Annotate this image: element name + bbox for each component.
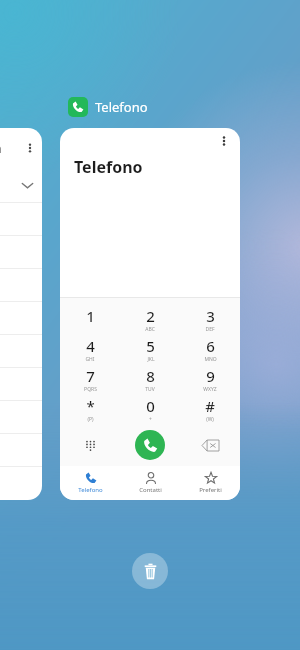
button[interactable]: 3 xyxy=(180,304,240,334)
button[interactable]: 9 xyxy=(180,364,240,394)
staticText: # xyxy=(205,396,215,416)
staticText: Telefono xyxy=(78,486,103,494)
staticText: GHI xyxy=(85,356,95,363)
staticText: (P) xyxy=(87,416,94,423)
button[interactable]: Contatti xyxy=(120,466,180,500)
staticText: Contatti xyxy=(139,486,162,494)
staticText: 1 xyxy=(86,306,95,326)
staticText: ca xyxy=(0,140,2,156)
button[interactable]: 5 xyxy=(120,334,180,364)
staticText: MNO xyxy=(204,356,217,363)
button[interactable]: * xyxy=(60,394,120,424)
button[interactable]: More options xyxy=(214,131,234,151)
staticText: WXYZ xyxy=(203,386,217,393)
staticText: DEF xyxy=(205,326,215,333)
staticText: PQRS xyxy=(84,386,97,393)
staticText: 8 xyxy=(146,366,155,386)
button[interactable]: Call xyxy=(135,430,165,460)
staticText: * xyxy=(86,396,95,416)
button[interactable] xyxy=(0,467,42,499)
staticText: JKL xyxy=(147,356,155,363)
staticText: Telefono xyxy=(95,98,148,116)
staticText: ABC xyxy=(145,326,155,333)
button[interactable]: 1 xyxy=(60,304,120,334)
button[interactable]: ca xyxy=(0,128,42,500)
button[interactable]: Backspace xyxy=(180,424,240,466)
staticText: TUV xyxy=(145,386,155,393)
button[interactable]: 6 xyxy=(180,334,240,364)
staticText: Preferiti xyxy=(199,486,222,494)
staticText: 3 xyxy=(206,306,215,326)
staticText: 6 xyxy=(206,336,215,356)
button[interactable]: Close all xyxy=(132,553,168,589)
button[interactable]: 8 xyxy=(120,364,180,394)
button[interactable]: Hide keypad xyxy=(60,424,120,466)
staticText: 2 xyxy=(146,306,155,326)
button[interactable]: 7 xyxy=(60,364,120,394)
staticText: 9 xyxy=(206,366,215,386)
button[interactable]: Preferiti xyxy=(180,466,240,500)
staticText: 5 xyxy=(146,336,155,356)
staticText: 7 xyxy=(86,366,95,386)
button[interactable]: Telefono xyxy=(60,466,120,500)
button[interactable]: 0 xyxy=(120,394,180,424)
staticText: 0 xyxy=(146,396,155,416)
button[interactable]: 2 xyxy=(120,304,180,334)
staticText: 4 xyxy=(86,336,95,356)
staticText: + xyxy=(149,416,152,423)
button[interactable]: # xyxy=(180,394,240,424)
button[interactable]: 4 xyxy=(60,334,120,364)
staticText: Telefono xyxy=(74,156,143,178)
staticText: (W) xyxy=(206,416,214,423)
